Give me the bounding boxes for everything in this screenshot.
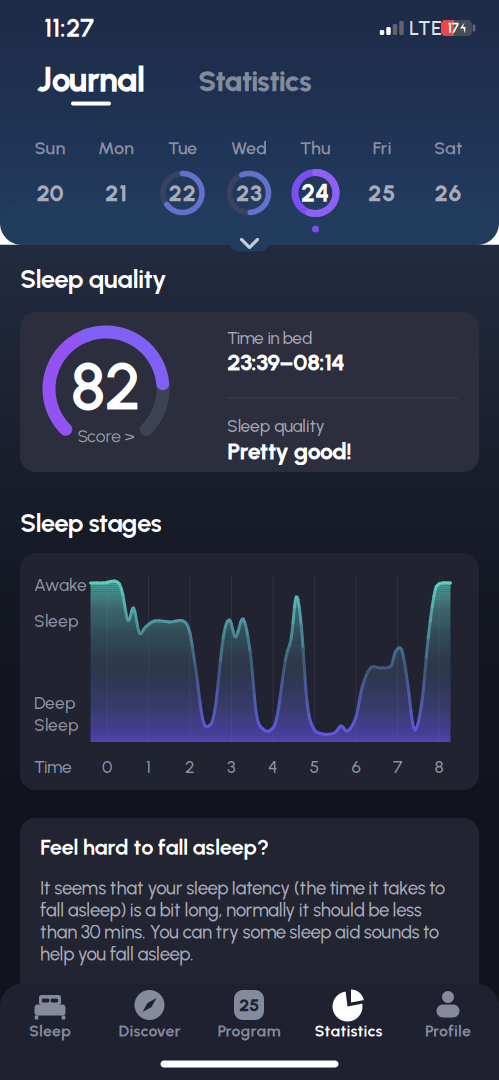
staticText: 8: [434, 757, 443, 777]
staticText: 25: [239, 994, 259, 1016]
staticText: Sat: [434, 137, 462, 159]
button[interactable]: Sleep: [5, 979, 95, 1051]
button[interactable]: Sun: [10, 135, 90, 245]
staticText: 11:27: [44, 13, 94, 43]
staticText: fall asleep) is a bit long, normally it …: [40, 899, 422, 921]
staticText: 26: [434, 179, 461, 207]
staticText: 20: [36, 179, 63, 207]
button[interactable]: Statistics: [303, 979, 393, 1051]
button[interactable]: Discover: [104, 979, 194, 1051]
button[interactable]: Sat: [408, 135, 488, 245]
staticText: 1: [146, 757, 151, 777]
staticText: Discover: [118, 1021, 180, 1041]
button[interactable]: 82: [70, 347, 141, 447]
staticText: Sleep stages: [20, 507, 161, 539]
staticText: Fri: [372, 137, 391, 159]
staticText: Feel hard to fall asleep?: [40, 834, 269, 860]
staticText: Time in bed: [227, 328, 313, 348]
staticText: 6: [351, 757, 360, 777]
staticText: Statistics: [198, 63, 312, 99]
button[interactable]: Mon: [76, 135, 156, 245]
staticText: Mon: [98, 137, 134, 159]
staticText: 2: [185, 757, 195, 777]
staticText: Wed: [231, 137, 267, 159]
staticText: 3: [227, 757, 236, 777]
staticText: Sleep: [34, 715, 79, 735]
button[interactable]: 25: [204, 979, 294, 1051]
button[interactable]: Fri: [342, 135, 422, 245]
staticText: 17: [447, 20, 458, 36]
button[interactable]: Collapse calendar: [213, 229, 285, 259]
staticText: Journal: [36, 59, 145, 100]
staticText: Sun: [34, 137, 65, 159]
staticText: 24: [301, 178, 330, 208]
staticText: Sleep quality: [227, 416, 324, 436]
staticText: Profile: [425, 1021, 471, 1041]
staticText: Program: [217, 1021, 280, 1041]
staticText: Awake: [34, 575, 87, 595]
staticText: 4: [268, 757, 278, 777]
staticText: 82: [70, 347, 141, 426]
button[interactable]: Journal: [21, 45, 161, 115]
staticText: Sleep: [34, 611, 79, 631]
staticText: Thu: [300, 137, 331, 159]
staticText: 21: [105, 179, 127, 207]
staticText: 22: [168, 179, 196, 207]
button[interactable]: Wed: [209, 135, 289, 245]
staticText: LTE: [409, 16, 442, 40]
staticText: 7: [393, 757, 402, 777]
staticText: 23:39–08:14: [227, 348, 345, 376]
staticText: Pretty good!: [227, 437, 352, 465]
button[interactable]: Statistics: [198, 63, 312, 99]
staticText: 25: [368, 179, 396, 207]
staticText: Tue: [168, 137, 197, 159]
staticText: Statistics: [314, 1021, 382, 1041]
staticText: Sleep quality: [20, 263, 167, 295]
staticText: Score >: [77, 426, 135, 447]
staticText: help you fall asleep.: [40, 943, 194, 965]
button[interactable]: Thu: [275, 135, 355, 245]
button[interactable]: Tue: [142, 135, 222, 245]
staticText: 23: [236, 179, 262, 207]
staticText: 0: [102, 757, 112, 777]
staticText: Sleep: [29, 1021, 71, 1041]
button[interactable]: Profile: [403, 979, 493, 1051]
staticText: It seems that your sleep latency (the ti…: [40, 877, 445, 899]
staticText: 5: [309, 757, 319, 777]
staticText: Deep: [34, 693, 76, 713]
staticText: Time: [34, 757, 72, 777]
staticText: than 30 mins. You can try some sleep aid…: [40, 921, 439, 943]
